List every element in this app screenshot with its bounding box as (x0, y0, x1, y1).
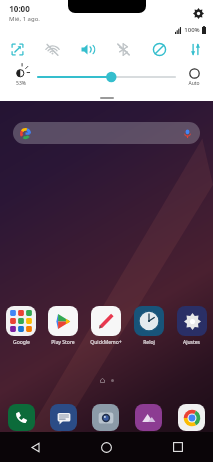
other: Mensajes (50, 404, 77, 431)
staticText: Google (13, 339, 30, 346)
staticText: 100% (184, 26, 200, 34)
button[interactable]: Mensajes (42, 402, 84, 432)
staticText: Play Store (51, 339, 75, 346)
button[interactable]: Play Store (42, 306, 84, 346)
button[interactable]: Wi-Fi (35, 36, 70, 62)
staticText: 10:00 (9, 3, 30, 14)
button[interactable]: Captura de pantalla (0, 36, 35, 62)
button[interactable]: Datos móviles (177, 36, 213, 62)
button[interactable]: Sonido (70, 36, 105, 62)
other: Galería (135, 404, 162, 431)
button[interactable]: Auto (181, 68, 207, 87)
button[interactable]: Ajustes (190, 5, 206, 21)
button[interactable]: QuickMemo+ (84, 306, 127, 346)
button[interactable]: Teléfono (0, 402, 42, 432)
staticText: 53% (16, 80, 26, 87)
button[interactable]: Ajustes (170, 306, 213, 346)
other: Teléfono (8, 404, 35, 431)
button[interactable]: Atrás (0, 432, 71, 462)
button[interactable] (38, 67, 175, 87)
other: Cámara (92, 404, 119, 431)
staticText: Mié, 1 ago. (9, 15, 40, 23)
button[interactable]: No molestar (141, 36, 177, 62)
staticText: Auto (188, 80, 200, 87)
button[interactable]: Google (0, 306, 42, 346)
staticText: Ajustes (183, 339, 200, 346)
button[interactable]: Cámara (84, 402, 127, 432)
button[interactable]: Recientes (142, 432, 213, 462)
button[interactable]: Galería (127, 402, 170, 432)
staticText: QuickMemo+ (90, 339, 122, 346)
button[interactable]: Buscar con Google (13, 122, 200, 144)
button[interactable]: 53% (10, 67, 32, 87)
button[interactable]: Chrome (170, 402, 213, 432)
button[interactable]: Inicio (71, 432, 142, 462)
button[interactable]: Reloj (127, 306, 170, 346)
button[interactable]: Bluetooth (105, 36, 141, 62)
staticText: Reloj (143, 339, 155, 346)
other: Chrome (178, 404, 205, 431)
